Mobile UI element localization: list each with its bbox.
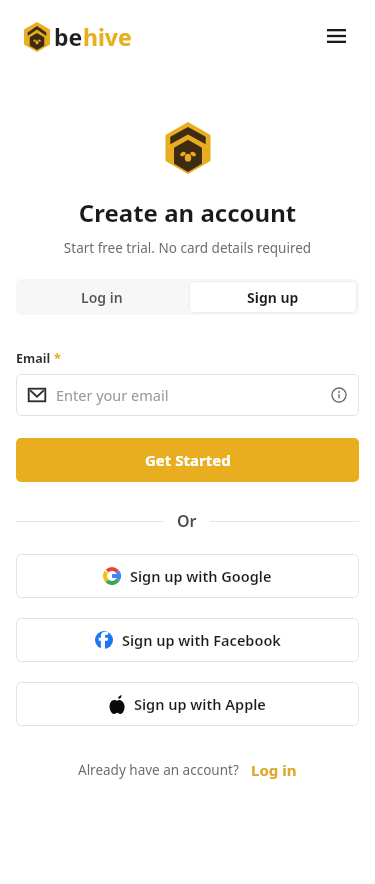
button[interactable]: Sign up with Facebook	[16, 618, 359, 662]
button[interactable]: Log in	[251, 760, 297, 780]
staticText: Sign up with Google	[130, 566, 272, 586]
button[interactable]: Sign up	[189, 281, 357, 313]
button[interactable]: Sign up with Google	[16, 554, 359, 598]
button[interactable]: Log in	[16, 279, 187, 315]
staticText: Sign up with Apple	[134, 694, 266, 714]
staticText: Email	[16, 350, 51, 367]
button[interactable]: Enter your email	[16, 374, 359, 416]
staticText: Log in	[81, 288, 123, 307]
staticText: *	[54, 350, 61, 367]
button[interactable]: Menu	[319, 19, 353, 53]
staticText: Already have an account?	[78, 761, 239, 779]
staticText: Start free trial. No card details requir…	[0, 239, 375, 257]
staticText: be	[54, 21, 83, 52]
staticText: Enter your email	[56, 385, 169, 405]
button[interactable]: Get Started	[16, 438, 359, 482]
staticText: hive	[83, 21, 132, 52]
button[interactable]: Sign up with Apple	[16, 682, 359, 726]
staticText: Create an account	[0, 196, 375, 229]
button[interactable]: be	[22, 21, 132, 52]
staticText: Or	[177, 510, 197, 532]
staticText: Get Started	[145, 450, 231, 470]
staticText: Sign up with Facebook	[122, 630, 281, 650]
staticText: Log in	[251, 760, 297, 780]
staticText: Sign up	[247, 288, 299, 307]
